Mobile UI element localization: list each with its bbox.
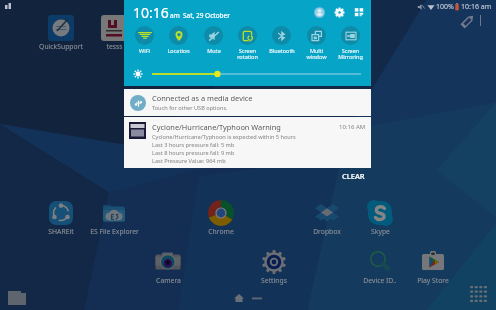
staticText: WiFi <box>139 47 150 54</box>
button[interactable]: Settings <box>334 7 345 18</box>
button[interactable]: Edit quick settings <box>354 7 364 17</box>
staticText: Skype <box>371 227 390 236</box>
button[interactable]: Dropbox <box>297 200 357 236</box>
button[interactable]: ES File Explorer <box>84 200 144 236</box>
staticText: Touch for other USB options. <box>152 104 228 112</box>
button[interactable] <box>152 69 361 79</box>
staticText: Screen Mirroring <box>338 47 363 61</box>
staticText: Location <box>167 47 190 54</box>
button[interactable]: Camera <box>138 249 198 285</box>
staticText: 100% <box>436 2 454 12</box>
button[interactable]: CLEAR <box>336 169 371 183</box>
staticText: Chrome <box>208 227 234 236</box>
staticText: Last 3 hours pressure fall: 5 mb <box>152 141 235 149</box>
button[interactable]: QuickSupport <box>31 15 91 51</box>
button[interactable]: User <box>314 7 325 18</box>
staticText: Mute <box>207 47 221 54</box>
staticText: Settings <box>261 276 287 285</box>
staticText: tesss <box>106 42 123 51</box>
staticText: QuickSupport <box>39 42 83 51</box>
staticText: Cyclone/Hurricane/Typhoon Warning <box>152 122 281 132</box>
staticText: Camera <box>156 276 181 285</box>
button[interactable]: Home <box>234 293 244 303</box>
button[interactable]: Apps <box>470 286 490 306</box>
staticText: CLEAR <box>342 171 365 181</box>
staticText: Bluetooth <box>269 47 295 54</box>
staticText: Cyclone/Hurricane/Typhoon is expected wi… <box>152 133 296 141</box>
staticText: SHAREit <box>48 227 74 236</box>
button[interactable]: Screen rotation <box>232 26 263 61</box>
staticText: Screen rotation <box>237 47 258 61</box>
staticText: am <box>170 11 180 20</box>
staticText: Play Store <box>417 276 449 285</box>
staticText: Device ID.. <box>363 276 397 285</box>
button[interactable]: Screen Mirroring <box>335 26 366 61</box>
button[interactable]: tesss <box>84 15 144 51</box>
button[interactable]: Skype <box>350 200 410 236</box>
button[interactable]: Device ID.. <box>350 249 410 285</box>
button[interactable]: Play Store <box>403 249 463 285</box>
button[interactable]: SHAREit <box>31 200 91 236</box>
staticText: Connected as a media device <box>152 93 253 103</box>
button[interactable]: Back <box>252 293 262 303</box>
staticText: 10:16 am <box>461 2 492 12</box>
button[interactable]: Location <box>163 26 194 54</box>
button[interactable]: Chrome <box>191 200 251 236</box>
button[interactable]: Mute <box>198 26 229 54</box>
button[interactable]: Settings <box>244 249 304 285</box>
staticText: Dropbox <box>313 227 341 236</box>
button[interactable]: Recents <box>8 288 26 306</box>
staticText: 10:16 <box>133 3 169 22</box>
button[interactable]: Bluetooth <box>266 26 297 54</box>
staticText: Last Pressure Value: 964 mb <box>152 157 226 165</box>
staticText: Multi window <box>306 47 327 61</box>
button[interactable]: Connected as a media device <box>124 89 371 116</box>
button[interactable]: Cyclone/Hurricane/Typhoon Warning <box>124 117 371 168</box>
button[interactable]: WiFi <box>129 26 160 54</box>
button[interactable]: Multi window <box>301 26 332 61</box>
staticText: 10:16 AM <box>339 123 366 131</box>
button[interactable]: 10:16 <box>133 3 230 22</box>
staticText: Sat, 29 October <box>183 11 230 20</box>
staticText: ES File Explorer <box>90 227 139 236</box>
button[interactable]: Edit <box>459 13 476 30</box>
staticText: Last 8 hours pressure fall: 9 mb <box>152 149 235 157</box>
